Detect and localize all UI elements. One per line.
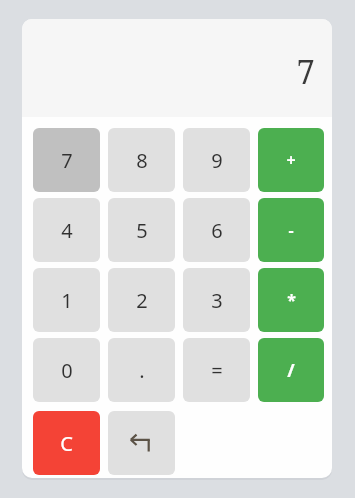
button[interactable]: 7 xyxy=(33,128,100,192)
button[interactable]: 4 xyxy=(33,198,100,262)
button[interactable]: * xyxy=(258,268,324,332)
button[interactable]: C xyxy=(33,411,100,475)
staticText: 1 xyxy=(61,287,73,314)
staticText: C xyxy=(60,430,73,457)
staticText: + xyxy=(286,149,296,171)
button[interactable]: + xyxy=(258,128,324,192)
staticText: 0 xyxy=(61,357,73,384)
staticText: 8 xyxy=(136,147,148,174)
staticText: / xyxy=(287,358,295,383)
staticText: 5 xyxy=(136,217,148,244)
button[interactable]: 5 xyxy=(108,198,175,262)
button[interactable]: Backspace xyxy=(108,411,175,475)
button[interactable]: = xyxy=(183,338,250,402)
staticText: 2 xyxy=(136,287,148,314)
staticText: 9 xyxy=(211,147,223,174)
staticText: 4 xyxy=(61,217,73,244)
staticText: 3 xyxy=(211,287,223,314)
staticText: 7 xyxy=(296,49,315,94)
button[interactable]: 8 xyxy=(108,128,175,192)
button[interactable]: 2 xyxy=(108,268,175,332)
staticText: = xyxy=(211,357,223,384)
button[interactable]: 1 xyxy=(33,268,100,332)
button[interactable]: 9 xyxy=(183,128,250,192)
button[interactable]: 3 xyxy=(183,268,250,332)
staticText: - xyxy=(288,219,294,241)
button[interactable]: 6 xyxy=(183,198,250,262)
staticText: 6 xyxy=(211,217,223,244)
staticText: . xyxy=(139,357,145,384)
staticText: * xyxy=(287,289,296,311)
button[interactable]: . xyxy=(108,338,175,402)
button[interactable]: - xyxy=(258,198,324,262)
button[interactable]: / xyxy=(258,338,324,402)
button[interactable]: 0 xyxy=(33,338,100,402)
staticText: 7 xyxy=(61,147,73,174)
